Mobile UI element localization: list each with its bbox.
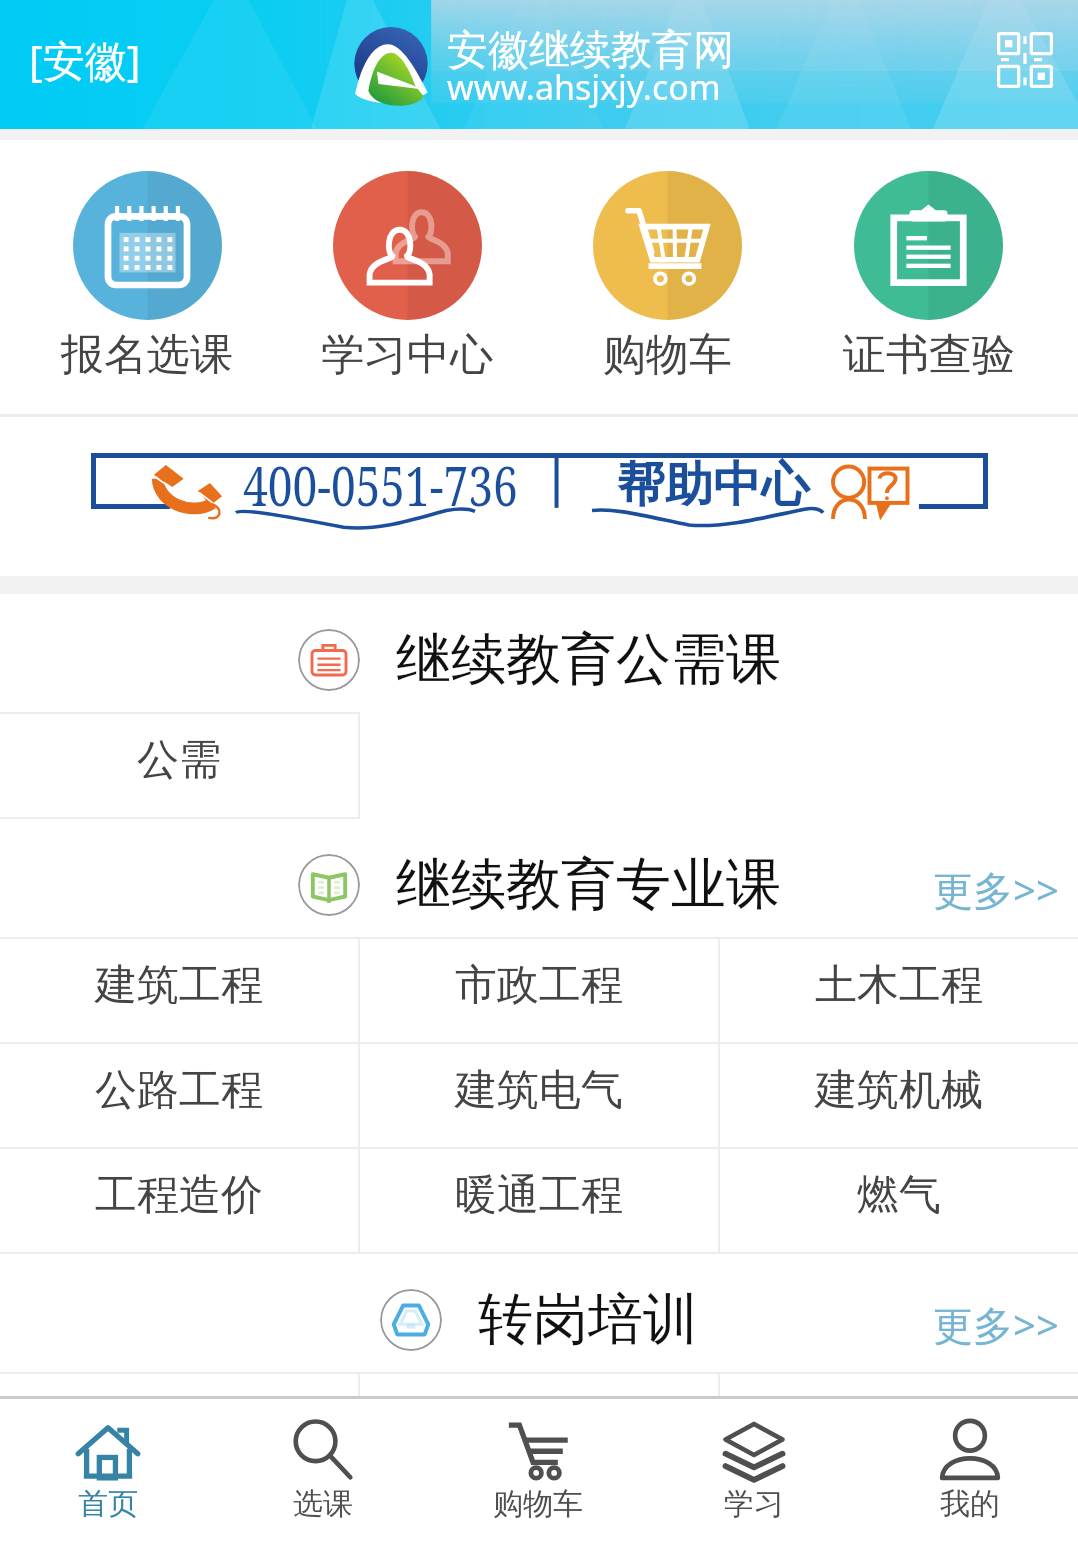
staticText: 暖通工程 xyxy=(455,1169,623,1222)
button[interactable]: 土木工程 xyxy=(720,939,1078,1042)
button[interactable]: 购物车 xyxy=(430,1399,646,1543)
button[interactable]: 更多>> xyxy=(933,862,1059,917)
button[interactable]: 建筑工程 xyxy=(0,939,358,1042)
staticText: 市政工程 xyxy=(455,959,623,1012)
button[interactable]: 选课 xyxy=(215,1399,430,1543)
staticText: 购物车 xyxy=(603,328,732,382)
staticText: 转岗培训 xyxy=(478,1285,698,1354)
button[interactable]: 建筑电气 xyxy=(360,1044,718,1147)
button[interactable]: 燃气 xyxy=(720,1149,1078,1252)
button[interactable]: 更多>> xyxy=(933,1297,1059,1352)
button[interactable]: 暖通工程 xyxy=(360,1149,718,1252)
button[interactable]: 工程造价 xyxy=(0,1149,358,1252)
staticText: 建筑电气 xyxy=(455,1064,623,1117)
staticText: 土木工程 xyxy=(815,959,983,1012)
button[interactable]: 学习 xyxy=(646,1399,862,1543)
staticText: 报名选课 xyxy=(61,328,233,382)
staticText: [安徽] xyxy=(29,31,141,88)
button[interactable]: 建筑机械 xyxy=(720,1044,1078,1147)
staticText: 首页 xyxy=(78,1485,138,1523)
button[interactable]: 首页 xyxy=(0,1399,215,1543)
staticText: 购物车 xyxy=(493,1485,583,1523)
button[interactable]: 扫一扫 xyxy=(997,32,1053,88)
button[interactable]: 证书查验 xyxy=(798,140,1059,414)
staticText: 学习中心 xyxy=(321,328,493,382)
staticText: 证书查验 xyxy=(843,328,1015,382)
staticText: 继续教育专业课 xyxy=(396,850,781,919)
staticText: 我的 xyxy=(940,1485,1000,1523)
staticText: 继续教育公需课 xyxy=(396,625,781,694)
staticText: 公需 xyxy=(137,734,221,787)
staticText: 400-0551-736 xyxy=(243,447,518,521)
button[interactable]: 购物车 xyxy=(537,140,798,414)
staticText: 安徽继续教育网 xyxy=(447,25,734,77)
button[interactable] xyxy=(91,453,988,509)
button[interactable]: 报名选课 xyxy=(17,140,277,414)
staticText: 工程造价 xyxy=(95,1169,263,1222)
staticText: 选课 xyxy=(293,1485,353,1523)
button[interactable]: 公路工程 xyxy=(0,1044,358,1147)
staticText: 建筑工程 xyxy=(95,959,263,1012)
staticText: 学习 xyxy=(724,1485,784,1523)
staticText: www.ahsjxjy.com xyxy=(447,64,721,110)
staticText: 公路工程 xyxy=(95,1064,263,1117)
button[interactable]: 市政工程 xyxy=(360,939,718,1042)
button[interactable]: 学习中心 xyxy=(277,140,537,414)
staticText: 燃气 xyxy=(857,1169,941,1222)
button[interactable]: 我的 xyxy=(862,1399,1078,1543)
staticText: 建筑机械 xyxy=(815,1064,983,1117)
button[interactable]: 公需 xyxy=(0,714,358,817)
staticText: 帮助中心 xyxy=(617,455,809,515)
